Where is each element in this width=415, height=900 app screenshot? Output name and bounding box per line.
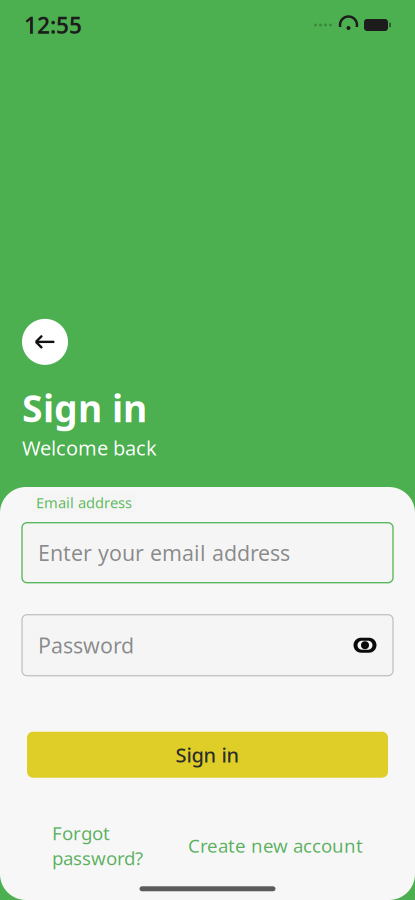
button[interactable]: Enter your email address (22, 523, 393, 583)
staticText: Sign in (22, 383, 147, 432)
button[interactable]: Sign in (27, 732, 388, 778)
staticText: Create new account (188, 833, 363, 858)
button[interactable]: Password (22, 615, 393, 676)
staticText: Sign in (175, 741, 239, 768)
staticText: Forgot password? (52, 821, 143, 870)
button[interactable]: Forgot password? (46, 813, 149, 878)
staticText: 12:55 (24, 10, 82, 40)
button[interactable]: Back (22, 319, 68, 365)
staticText: Welcome back (22, 434, 157, 461)
staticText: Email address (36, 493, 132, 512)
staticText: Password (38, 631, 134, 659)
button[interactable]: Create new account (182, 825, 369, 866)
staticText: Enter your email address (38, 538, 290, 567)
